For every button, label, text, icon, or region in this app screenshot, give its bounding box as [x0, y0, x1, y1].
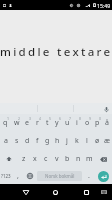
- staticText: 9: [89, 116, 92, 121]
- staticText: e: [25, 118, 29, 128]
- staticText: v: [55, 154, 59, 164]
- staticText: z: [22, 154, 26, 164]
- staticText: b: [65, 154, 70, 164]
- staticText: middle textarea: [0, 44, 112, 60]
- button[interactable]: Change language: [24, 168, 36, 184]
- staticText: t: [46, 118, 49, 128]
- staticText: 6: [59, 116, 62, 121]
- staticText: w: [14, 118, 20, 128]
- staticText: a: [4, 136, 8, 146]
- staticText: o: [85, 118, 90, 128]
- button[interactable]: l: [82, 132, 92, 150]
- button[interactable]: y: [52, 114, 62, 132]
- staticText: 15:49: [97, 2, 111, 9]
- button[interactable]: .: [83, 168, 95, 184]
- button[interactable]: f: [32, 132, 42, 150]
- staticText: 2: [18, 116, 21, 121]
- staticText: æ: [104, 136, 111, 146]
- button[interactable]: x: [29, 150, 40, 168]
- button[interactable]: ,: [11, 168, 24, 184]
- staticText: r: [36, 118, 39, 128]
- staticText: 4: [39, 116, 42, 121]
- button[interactable]: Enter: [95, 168, 112, 184]
- button[interactable]: h: [52, 132, 62, 150]
- button[interactable]: Shift: [0, 150, 18, 168]
- button[interactable]: j: [62, 132, 72, 150]
- staticText: x: [33, 154, 37, 164]
- button[interactable]: z: [18, 150, 29, 168]
- button[interactable]: Recent apps: [78, 184, 95, 200]
- staticText: .: [88, 171, 90, 181]
- staticText: 0: [99, 116, 102, 121]
- staticText: f: [36, 136, 39, 146]
- staticText: p: [95, 118, 100, 128]
- button[interactable]: d: [22, 132, 32, 150]
- button[interactable]: g: [42, 132, 52, 150]
- staticText: n: [76, 154, 81, 164]
- staticText: k: [75, 136, 79, 146]
- staticText: h: [55, 136, 60, 146]
- staticText: q: [3, 118, 8, 128]
- staticText: ø: [95, 136, 100, 146]
- staticText: i: [76, 118, 78, 128]
- button[interactable]: b: [62, 150, 73, 168]
- button[interactable]: m: [84, 150, 95, 168]
- button[interactable]: Switch keyboard: [96, 184, 112, 200]
- staticText: 1: [7, 116, 10, 121]
- staticText: m: [86, 154, 93, 164]
- button[interactable]: ?123: [0, 168, 11, 184]
- staticText: u: [65, 118, 70, 128]
- button[interactable]: å: [102, 114, 112, 132]
- button[interactable]: v: [51, 150, 62, 168]
- staticText: j: [66, 136, 68, 146]
- button[interactable]: n: [73, 150, 84, 168]
- staticText: l: [86, 136, 88, 146]
- staticText: ?123: [1, 173, 11, 179]
- button[interactable]: i: [72, 114, 82, 132]
- button[interactable]: r: [32, 114, 42, 132]
- staticText: 5: [49, 116, 52, 121]
- button[interactable]: æ: [102, 132, 112, 150]
- button[interactable]: s: [11, 132, 22, 150]
- staticText: 3: [29, 116, 32, 121]
- button[interactable]: ø: [92, 132, 102, 150]
- button[interactable]: Backspace: [95, 150, 112, 168]
- staticText: å: [105, 118, 109, 128]
- staticText: 7: [69, 116, 72, 121]
- button[interactable]: Home: [47, 184, 64, 200]
- button[interactable]: Voice input: [102, 105, 110, 113]
- button[interactable]: p: [92, 114, 102, 132]
- button[interactable]: a: [0, 132, 11, 150]
- button[interactable]: Hide keyboard: [17, 184, 34, 200]
- button[interactable]: u: [62, 114, 72, 132]
- button[interactable]: Norsk bokmål: [37, 171, 82, 181]
- staticText: ,: [17, 171, 19, 181]
- staticText: y: [55, 118, 59, 128]
- staticText: 8: [79, 116, 82, 121]
- button[interactable]: o: [82, 114, 92, 132]
- button[interactable]: e: [22, 114, 32, 132]
- staticText: g: [45, 136, 50, 146]
- staticText: Norsk bokmål: [45, 173, 75, 179]
- staticText: c: [44, 154, 48, 164]
- button[interactable]: w: [11, 114, 22, 132]
- button[interactable]: k: [72, 132, 82, 150]
- button[interactable]: q: [0, 114, 11, 132]
- staticText: s: [15, 136, 19, 146]
- staticText: d: [25, 136, 30, 146]
- button[interactable]: c: [40, 150, 51, 168]
- button[interactable]: t: [42, 114, 52, 132]
